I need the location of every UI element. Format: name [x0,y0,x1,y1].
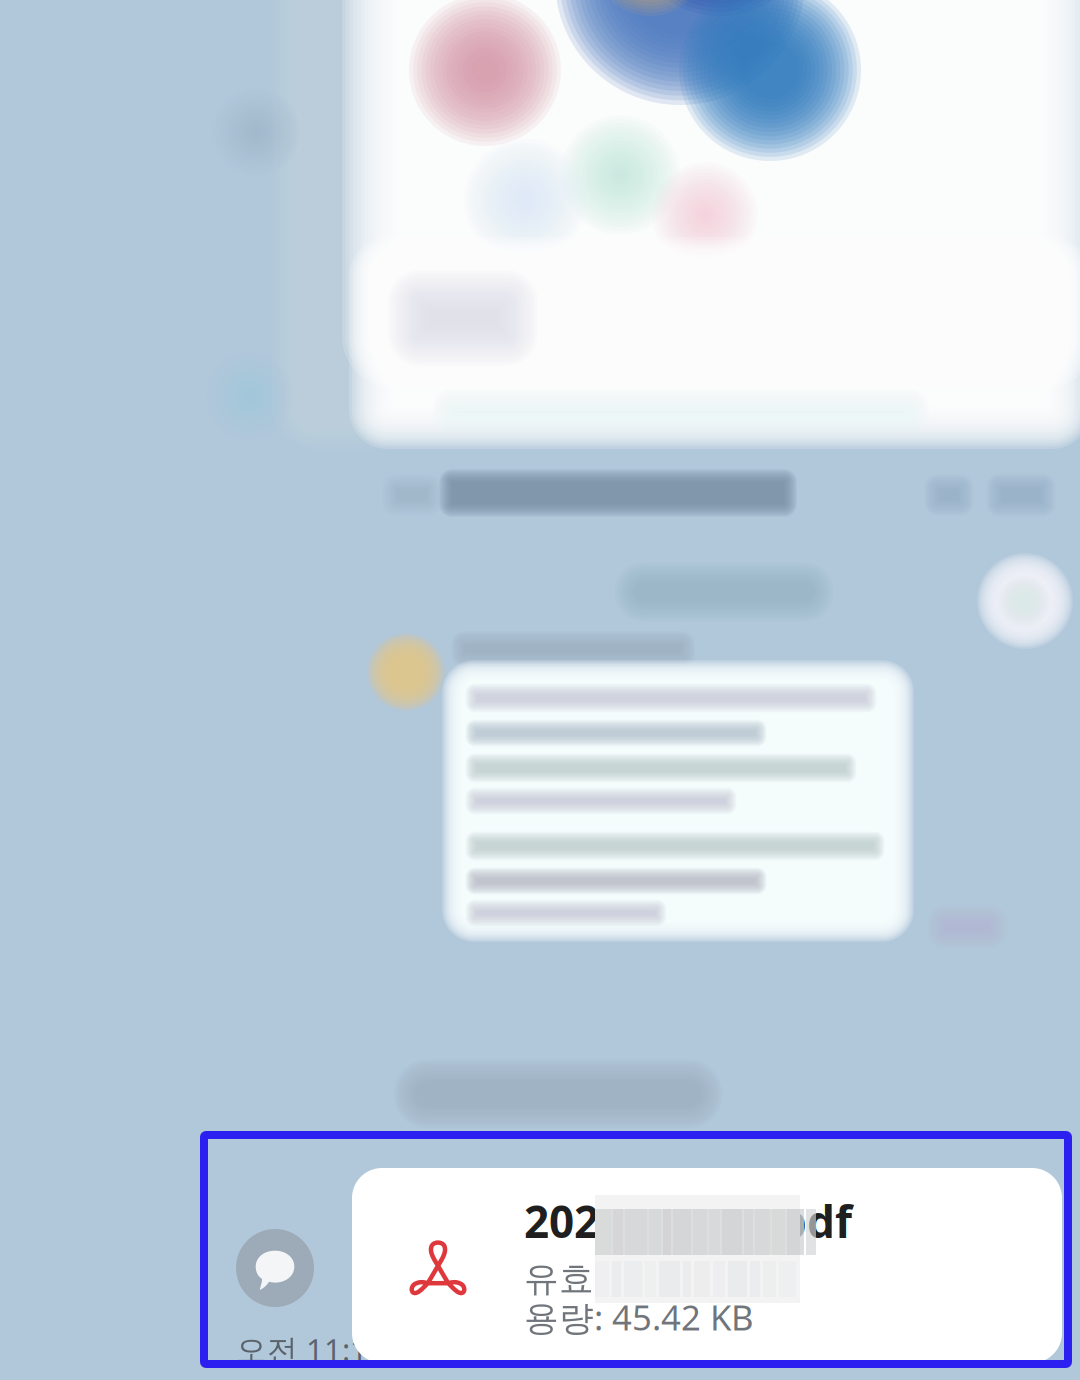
staticText: 유효기 [524,1258,629,1300]
staticText: 오전 11:10 [236,1329,386,1370]
staticText: 용량: 45.42 KB [524,1294,754,1340]
staticText: 2022 [524,1192,624,1250]
staticText: pdf [779,1192,852,1250]
button[interactable]: 2022 [352,1168,1062,1363]
